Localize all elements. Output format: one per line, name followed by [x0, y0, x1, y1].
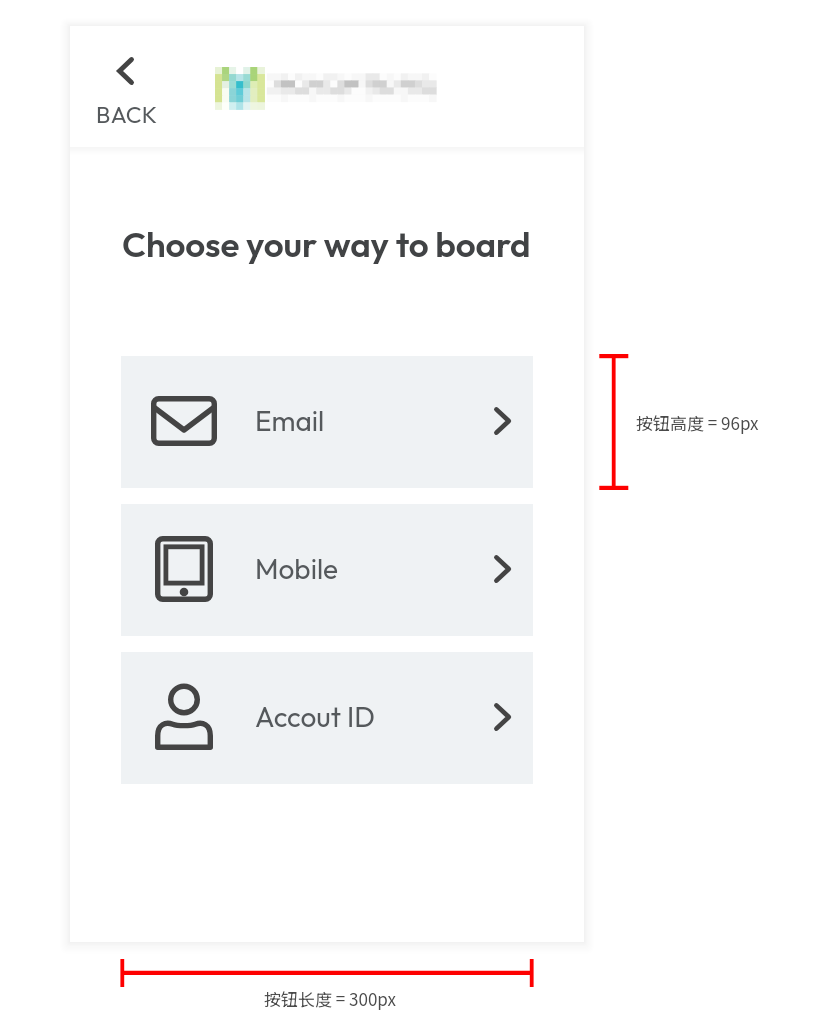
button[interactable]: Accout ID — [121, 652, 533, 784]
button[interactable]: Email — [121, 356, 533, 488]
staticText: Mobile — [255, 551, 339, 586]
staticText: BACK — [96, 100, 158, 129]
staticText: Accout ID — [255, 699, 375, 734]
staticText: Choose your way to board — [122, 222, 531, 266]
staticText: 按钮长度 = 300px — [264, 986, 396, 1011]
button[interactable]: Back — [92, 52, 160, 130]
staticText: Email — [255, 403, 325, 438]
staticText: 按钮高度 = 96px — [636, 410, 759, 435]
button[interactable]: Mobile — [121, 504, 533, 636]
